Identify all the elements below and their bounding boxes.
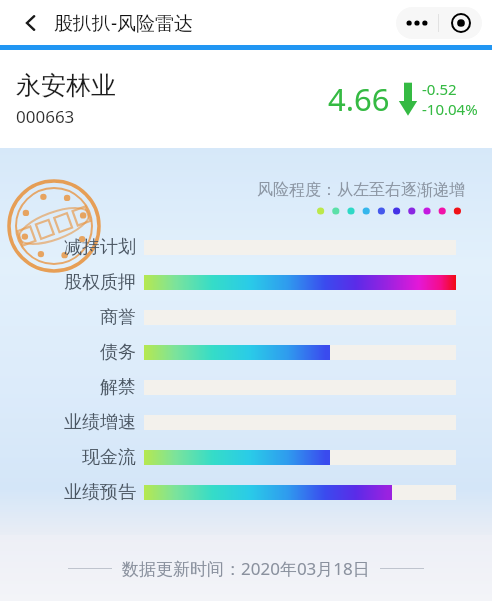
button[interactable]: 债务 (0, 335, 492, 370)
button[interactable]: 商誉 (0, 300, 492, 335)
button[interactable]: More (396, 7, 438, 39)
button[interactable]: 业绩增速 (0, 405, 492, 440)
button[interactable]: 减持计划 (0, 230, 492, 265)
staticText: 业绩增速 (64, 411, 136, 434)
staticText: 4.66 (328, 78, 390, 120)
staticText: 减持计划 (64, 236, 136, 259)
staticText: 股权质押 (64, 271, 136, 294)
staticText: 商誉 (100, 306, 136, 329)
staticText: 000663 (16, 105, 75, 128)
staticText: -10.04% (422, 99, 478, 119)
button[interactable]: Close (439, 7, 482, 39)
button[interactable]: 股权质押 (0, 265, 492, 300)
staticText: 股扒扒-风险雷达 (54, 10, 194, 36)
button[interactable]: 解禁 (0, 370, 492, 405)
button[interactable]: 业绩预告 (0, 475, 492, 510)
button[interactable]: Back (14, 6, 48, 40)
staticText: 永安林业 (16, 70, 116, 101)
staticText: 业绩预告 (64, 481, 136, 504)
staticText: 数据更新时间：2020年03月18日 (122, 557, 370, 580)
staticText: 解禁 (100, 376, 136, 399)
staticText: -0.52 (422, 79, 457, 99)
staticText: 债务 (100, 341, 136, 364)
staticText: 风险程度：从左至右逐渐递增 (257, 180, 465, 200)
staticText: 现金流 (82, 446, 136, 469)
button[interactable]: 现金流 (0, 440, 492, 475)
